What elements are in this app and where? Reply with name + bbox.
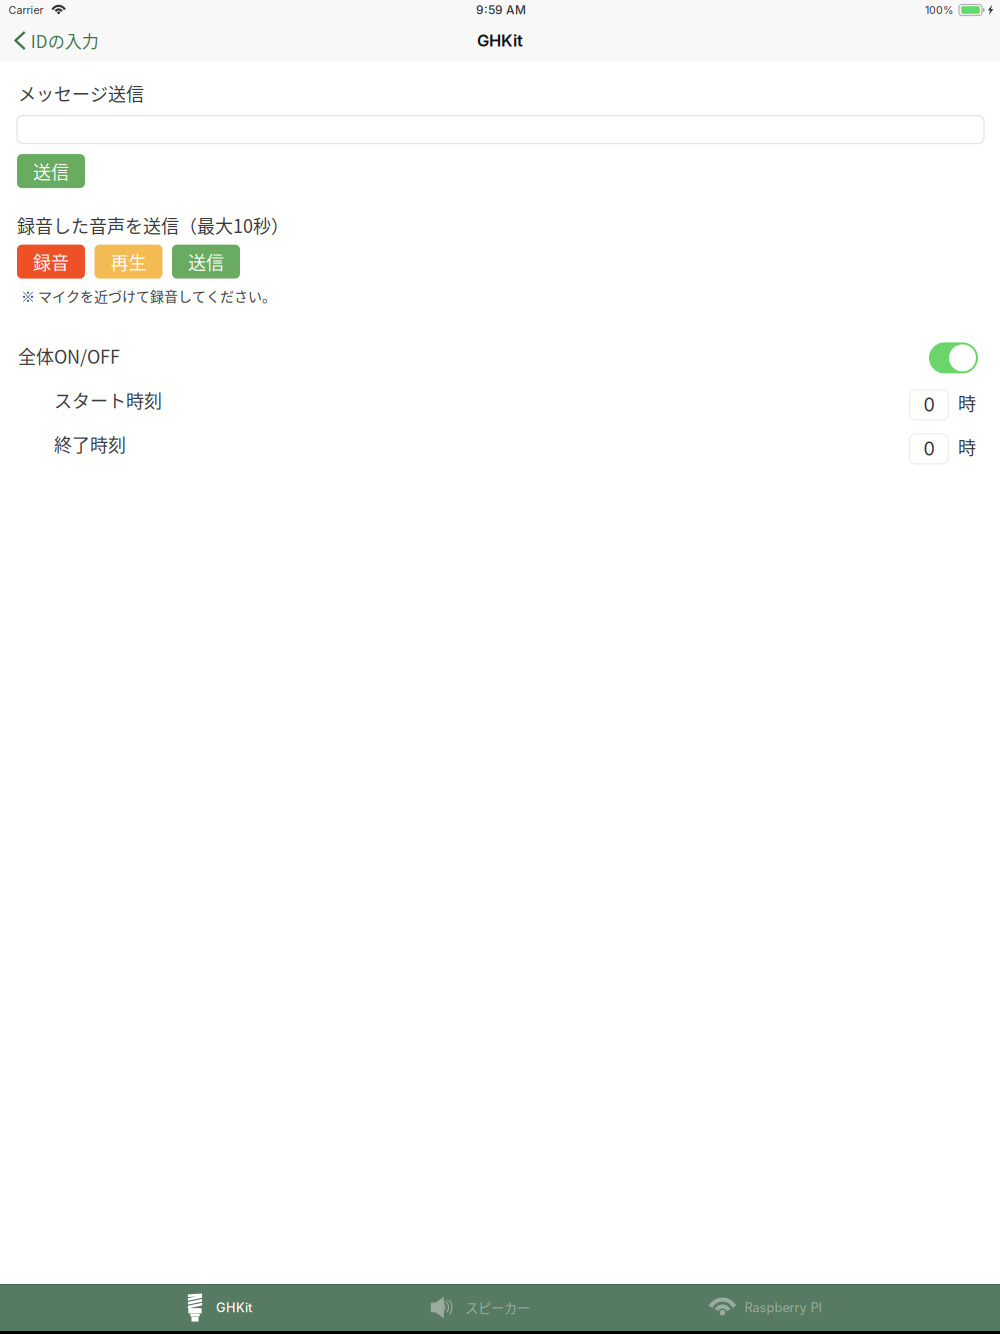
button[interactable]: 0 [909, 385, 948, 415]
staticText: Raspberry PI [744, 1300, 821, 1315]
staticText: ※ マイクを近づけて録音してください。 [21, 286, 276, 306]
button[interactable]: 送信 [172, 245, 240, 279]
staticText: GHKit [477, 30, 523, 50]
button[interactable]: 全体ON/OFF [929, 342, 978, 373]
staticText: 時 [958, 433, 976, 459]
staticText: 再生 [110, 249, 146, 275]
staticText: 送信 [33, 158, 69, 184]
button[interactable]: 再生 [94, 245, 162, 279]
staticText: 9:59 AM [476, 3, 526, 17]
button[interactable]: GHKit [187, 1285, 252, 1329]
button[interactable]: IDの入力 [0, 20, 109, 61]
staticText: GHKit [216, 1300, 252, 1315]
staticText: 録音 [33, 249, 69, 275]
button[interactable]: 送信 [17, 154, 85, 188]
staticText: スタート時刻 [54, 387, 162, 413]
staticText: 100% [925, 3, 953, 16]
button[interactable]: Raspberry PI [707, 1291, 821, 1324]
staticText: Carrier [8, 3, 43, 16]
button[interactable]: スピーカー [430, 1288, 530, 1326]
staticText: 時 [958, 389, 976, 415]
staticText: 送信 [188, 249, 224, 275]
staticText: 録音した音声を送信（最大10秒） [17, 212, 289, 238]
staticText: スピーカー [465, 1298, 530, 1317]
staticText: IDの入力 [31, 28, 99, 53]
staticText: 0 [923, 438, 934, 460]
staticText: 終了時刻 [54, 431, 126, 457]
button[interactable]: 録音 [17, 245, 85, 279]
staticText: 全体ON/OFF [18, 343, 120, 369]
button[interactable]: 0 [909, 429, 948, 459]
staticText: 0 [923, 394, 934, 416]
staticText: メッセージ送信 [18, 80, 144, 106]
